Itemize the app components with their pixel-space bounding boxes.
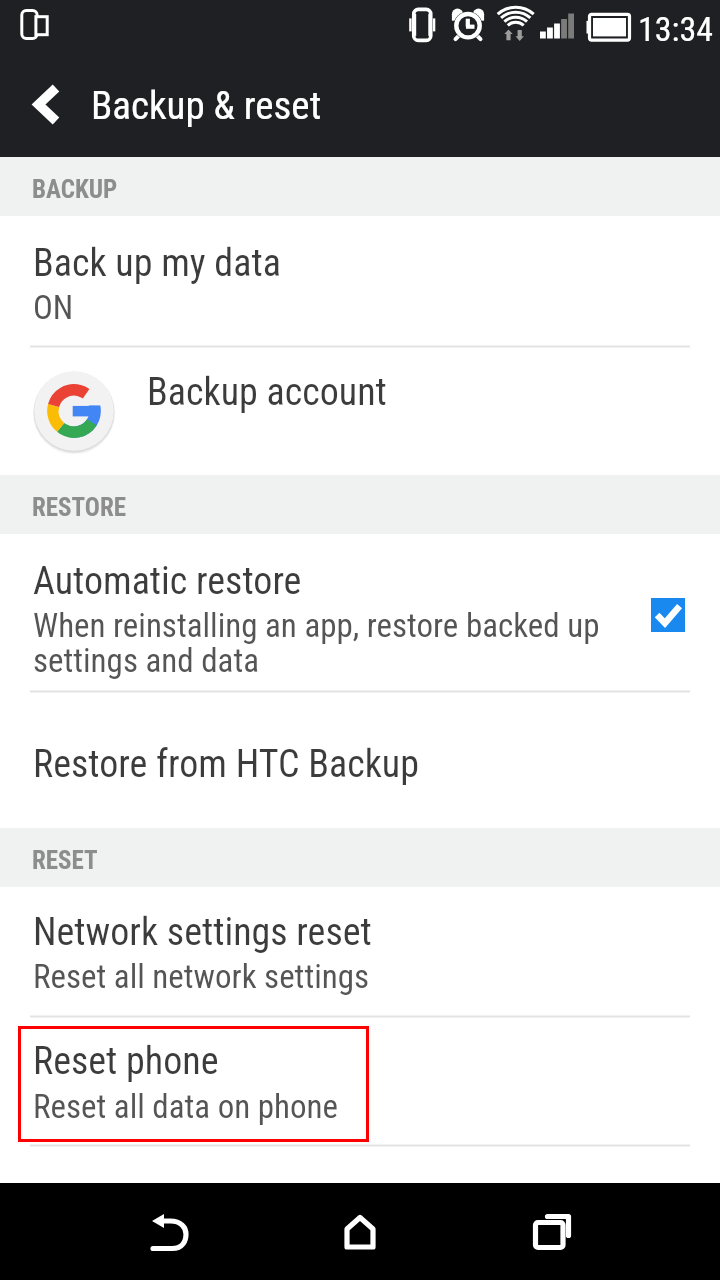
button[interactable]: Network settings reset — [0, 887, 720, 1016]
staticText: Reset all data on phone — [33, 1087, 339, 1126]
button[interactable]: Navigate up — [0, 56, 90, 157]
button[interactable]: Back up my data — [0, 216, 720, 346]
staticText: Restore from HTC Backup — [33, 742, 419, 787]
staticText: Backup account — [147, 370, 387, 415]
staticText: Reset phone — [33, 1039, 219, 1084]
button[interactable]: Home — [240, 1183, 480, 1280]
staticText: Reset all network settings — [33, 957, 370, 996]
staticText: Automatic restore — [33, 559, 302, 604]
button[interactable]: Reset phone — [0, 1016, 720, 1145]
staticText: RESET — [32, 846, 98, 875]
staticText: 13:34 — [638, 9, 714, 49]
button[interactable]: Restore from HTC Backup — [0, 691, 720, 828]
button[interactable]: Backup account — [0, 346, 720, 475]
staticText: BACKUP — [32, 175, 118, 204]
staticText: RESTORE — [32, 493, 126, 522]
button[interactable]: Recent apps — [480, 1183, 720, 1280]
staticText: ON — [33, 288, 74, 327]
staticText: Backup & reset — [91, 83, 322, 129]
button[interactable]: Automatic restore — [0, 534, 720, 691]
staticText: When reinstalling an app, restore backed… — [33, 606, 625, 680]
staticText: Network settings reset — [33, 910, 372, 955]
staticText: Back up my data — [33, 241, 281, 286]
button[interactable]: Back — [0, 1183, 240, 1280]
